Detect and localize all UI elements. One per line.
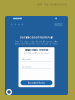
- staticText: Date of issue: [21, 66, 31, 68]
- staticText: Cover for short trips abroad with instan…: [14, 40, 58, 45]
- staticText: ...with top quality food: [34, 3, 67, 6]
- staticText: View and print Voucher: [27, 82, 45, 84]
- staticText: Dynamic Short-term Plan: [25, 49, 48, 51]
- staticText: Certificate of Motor Insurance: [24, 52, 49, 54]
- staticText: Dynamic Short-term Plan: [19, 36, 53, 39]
- staticText: Policy number: [21, 59, 31, 60]
- button[interactable]: View and print Voucher: [20, 80, 52, 85]
